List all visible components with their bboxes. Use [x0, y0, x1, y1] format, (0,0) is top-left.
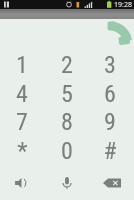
- staticText: *: [17, 137, 28, 165]
- button[interactable]: 1: [0, 51, 44, 79]
- button[interactable]: Backspace: [92, 170, 132, 196]
- button[interactable]: 6: [88, 80, 132, 108]
- staticText: 3: [104, 51, 116, 79]
- button[interactable]: 0: [45, 137, 89, 165]
- button[interactable]: 7: [0, 108, 44, 136]
- button[interactable]: 2: [45, 51, 89, 79]
- staticText: 1: [16, 51, 28, 79]
- staticText: 0: [61, 137, 73, 165]
- button[interactable]: 4: [0, 80, 44, 108]
- staticText: 8: [61, 108, 73, 136]
- button[interactable]: Speaker: [0, 170, 40, 196]
- button[interactable]: 3: [88, 51, 132, 79]
- staticText: 7: [16, 108, 28, 136]
- staticText: #: [103, 137, 117, 165]
- button[interactable]: Voice input: [47, 170, 87, 196]
- button[interactable]: #: [88, 137, 132, 165]
- button[interactable]: 5: [45, 80, 89, 108]
- staticText: 5: [61, 80, 73, 108]
- staticText: 9: [104, 108, 116, 136]
- staticText: 4: [16, 80, 28, 108]
- button[interactable]: *: [0, 137, 44, 165]
- staticText: 19:28: [114, 0, 132, 9]
- button[interactable]: 9: [88, 108, 132, 136]
- button[interactable]: 8: [45, 108, 89, 136]
- staticText: 6: [104, 80, 116, 108]
- staticText: 2: [61, 51, 73, 79]
